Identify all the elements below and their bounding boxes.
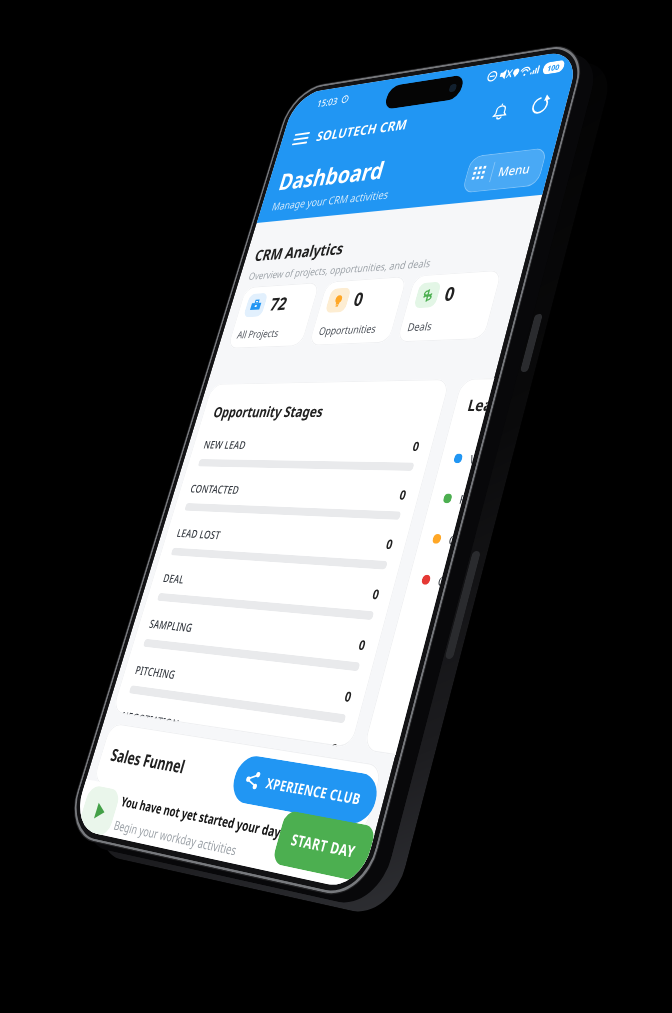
staticText: NEGOTIATION (122, 707, 334, 745)
staticText: 0 (442, 280, 458, 307)
staticText: SAMPLING (148, 616, 361, 653)
staticText: Lead Sources (465, 394, 490, 415)
staticText: CRM Analytics (252, 237, 347, 266)
button[interactable]: Menu (461, 147, 548, 193)
staticText: Campaign (447, 531, 454, 548)
button[interactable]: 0 (308, 276, 407, 346)
staticText: Others (436, 572, 443, 589)
staticText: Opportunity Stages (211, 401, 327, 421)
staticText: Website (468, 450, 475, 467)
button[interactable]: START DAY (271, 810, 377, 883)
button[interactable]: 0 (396, 270, 502, 342)
staticText: LEAD LOST (175, 525, 389, 552)
staticText: 0 (398, 486, 408, 503)
staticText: 0 (357, 635, 368, 653)
staticText: Menu (496, 159, 532, 180)
staticText: 0 (343, 686, 354, 705)
staticText: You have not yet started your day (119, 792, 284, 841)
staticText: Referral (458, 491, 465, 507)
staticText: Dashboard (275, 153, 389, 196)
staticText: Sales Funnel (108, 743, 188, 779)
staticText: SOLUTECH CRM (314, 114, 411, 145)
staticText: DEAL (162, 570, 375, 602)
staticText: PITCHING (133, 662, 347, 705)
staticText: 0 (384, 535, 395, 552)
staticText: 72 (267, 291, 290, 316)
staticText: XPERIENCE CLUB (264, 773, 363, 809)
button[interactable]: XPERIENCE CLUB (228, 754, 382, 827)
staticText: 100 (546, 61, 561, 73)
staticText: 15:03 (315, 94, 340, 110)
button[interactable]: Refresh (522, 88, 558, 122)
button[interactable]: 72 (227, 282, 320, 349)
staticText: START DAY (289, 828, 358, 863)
staticText: Opportunities (317, 321, 379, 338)
staticText: 0 (411, 437, 422, 454)
staticText: All Projects (236, 325, 281, 341)
staticText: Manage your CRM activities (270, 186, 391, 213)
staticText: 0 (371, 585, 382, 603)
staticText: Overview of projects, opportunities, and… (247, 255, 433, 283)
staticText: Deals (406, 318, 434, 334)
staticText: Begin your workday activities (112, 816, 239, 860)
button[interactable]: Open navigation menu (291, 126, 314, 149)
staticText: NEW LEAD (202, 437, 415, 454)
staticText: 0 (332, 739, 340, 746)
staticText: 0 (351, 286, 367, 312)
button[interactable]: Notifications (483, 94, 518, 128)
staticText: CONTACTED (189, 481, 402, 503)
